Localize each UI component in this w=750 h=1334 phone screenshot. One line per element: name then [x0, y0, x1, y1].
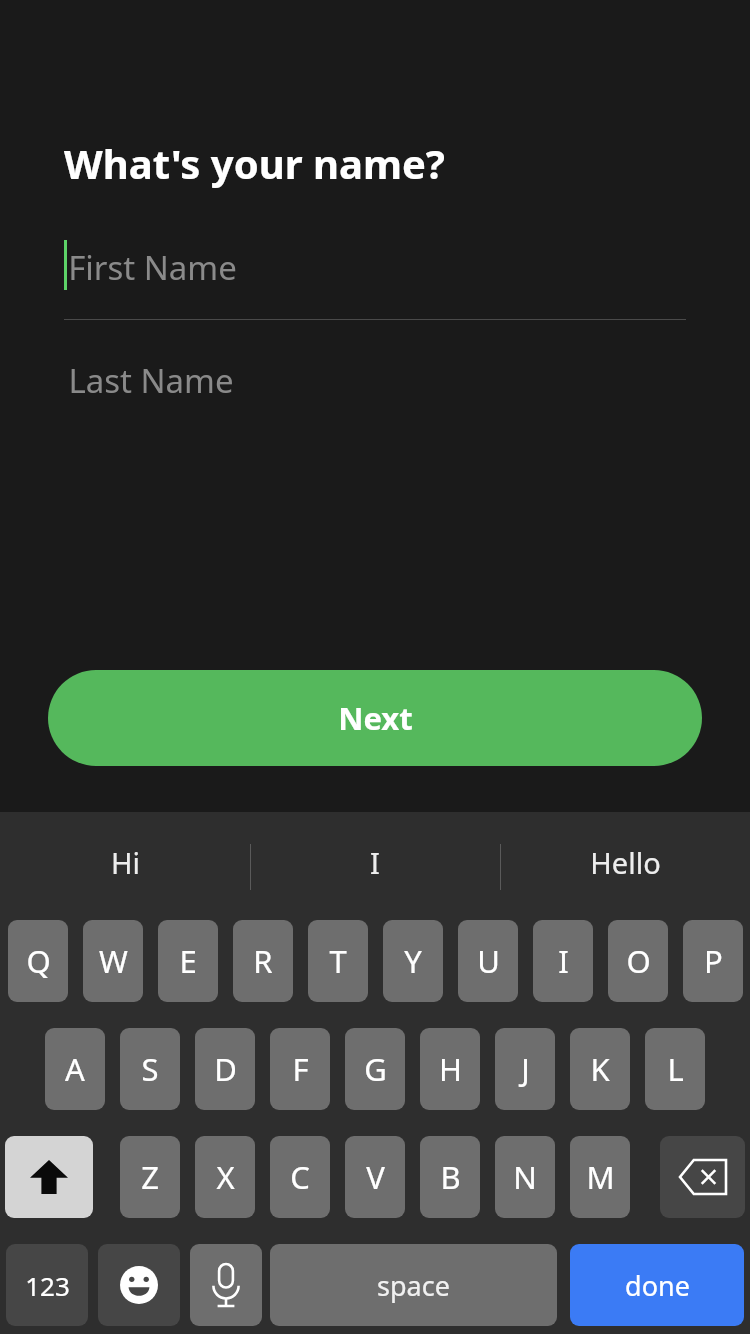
button[interactable]: done: [570, 1244, 744, 1326]
button[interactable]: W: [83, 920, 143, 1002]
staticText: W: [99, 940, 128, 982]
button[interactable]: G: [345, 1028, 405, 1110]
staticText: Last Name: [68, 358, 234, 403]
staticText: U: [477, 940, 500, 982]
button[interactable]: A: [45, 1028, 105, 1110]
staticText: V: [366, 1156, 385, 1198]
button[interactable]: Q: [8, 920, 68, 1002]
button[interactable]: 123: [6, 1244, 88, 1326]
button[interactable]: V: [345, 1136, 405, 1218]
button[interactable]: Voice input: [190, 1244, 262, 1326]
staticText: space: [377, 1267, 450, 1304]
button[interactable]: I: [250, 812, 500, 912]
staticText: X: [216, 1156, 235, 1198]
staticText: D: [214, 1048, 237, 1090]
button[interactable]: Y: [383, 920, 443, 1002]
staticText: done: [625, 1267, 690, 1304]
button[interactable]: O: [608, 920, 668, 1002]
staticText: Y: [404, 940, 422, 982]
staticText: E: [179, 940, 197, 982]
button[interactable]: Z: [120, 1136, 180, 1218]
button[interactable]: L: [645, 1028, 705, 1110]
staticText: Next: [338, 697, 413, 739]
button[interactable]: C: [270, 1136, 330, 1218]
button[interactable]: First Name: [64, 232, 686, 320]
staticText: O: [626, 940, 651, 982]
staticText: L: [667, 1048, 684, 1090]
staticText: Z: [141, 1156, 159, 1198]
staticText: A: [65, 1048, 85, 1090]
staticText: J: [521, 1048, 530, 1090]
staticText: N: [513, 1156, 537, 1198]
button[interactable]: T: [308, 920, 368, 1002]
staticText: B: [440, 1156, 461, 1198]
staticText: P: [704, 940, 723, 982]
button[interactable]: Emoji: [98, 1244, 180, 1326]
button[interactable]: J: [495, 1028, 555, 1110]
button[interactable]: Last Name: [64, 345, 686, 415]
button[interactable]: Next: [48, 670, 702, 766]
button[interactable]: M: [570, 1136, 630, 1218]
staticText: Hi: [111, 843, 140, 882]
button[interactable]: R: [233, 920, 293, 1002]
button[interactable]: U: [458, 920, 518, 1002]
staticText: I: [558, 940, 569, 982]
button[interactable]: X: [195, 1136, 255, 1218]
staticText: G: [364, 1048, 387, 1090]
staticText: T: [329, 940, 347, 982]
staticText: What's your name?: [64, 136, 445, 190]
button[interactable]: D: [195, 1028, 255, 1110]
staticText: H: [439, 1048, 462, 1090]
button[interactable]: Shift: [5, 1136, 93, 1218]
staticText: R: [253, 940, 273, 982]
staticText: C: [290, 1156, 310, 1198]
staticText: 123: [25, 1268, 70, 1303]
staticText: S: [141, 1048, 159, 1090]
button[interactable]: Hello: [500, 812, 750, 912]
button[interactable]: H: [420, 1028, 480, 1110]
button[interactable]: N: [495, 1136, 555, 1218]
button[interactable]: E: [158, 920, 218, 1002]
button[interactable]: S: [120, 1028, 180, 1110]
button[interactable]: Hi: [0, 812, 250, 912]
staticText: I: [370, 843, 380, 882]
staticText: Q: [26, 940, 51, 982]
button[interactable]: B: [420, 1136, 480, 1218]
staticText: Hello: [590, 843, 661, 882]
staticText: F: [292, 1048, 309, 1090]
staticText: M: [586, 1156, 615, 1198]
button[interactable]: F: [270, 1028, 330, 1110]
button[interactable]: Backspace: [660, 1136, 745, 1218]
button[interactable]: space: [270, 1244, 557, 1326]
staticText: K: [590, 1048, 610, 1090]
button[interactable]: P: [683, 920, 743, 1002]
button[interactable]: I: [533, 920, 593, 1002]
button[interactable]: K: [570, 1028, 630, 1110]
staticText: First Name: [68, 245, 237, 290]
